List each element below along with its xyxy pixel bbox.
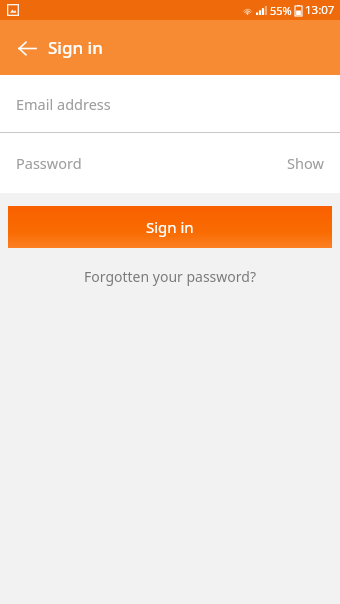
staticText: 13:07 bbox=[305, 2, 335, 18]
button[interactable]: Password bbox=[0, 133, 340, 193]
staticText: 55% bbox=[270, 3, 292, 18]
staticText: Show bbox=[287, 153, 324, 173]
staticText: Sign in bbox=[48, 36, 103, 59]
button[interactable]: Forgotten your password? bbox=[0, 267, 340, 286]
staticText: Forgotten your password? bbox=[84, 267, 256, 286]
staticText: Password bbox=[16, 153, 82, 173]
button[interactable]: Back bbox=[8, 29, 46, 67]
button[interactable]: Email address bbox=[0, 75, 340, 132]
button[interactable]: Show bbox=[287, 153, 324, 173]
staticText: Email address bbox=[16, 94, 111, 114]
button[interactable]: Sign in bbox=[8, 206, 332, 248]
staticText: Sign in bbox=[146, 217, 194, 237]
